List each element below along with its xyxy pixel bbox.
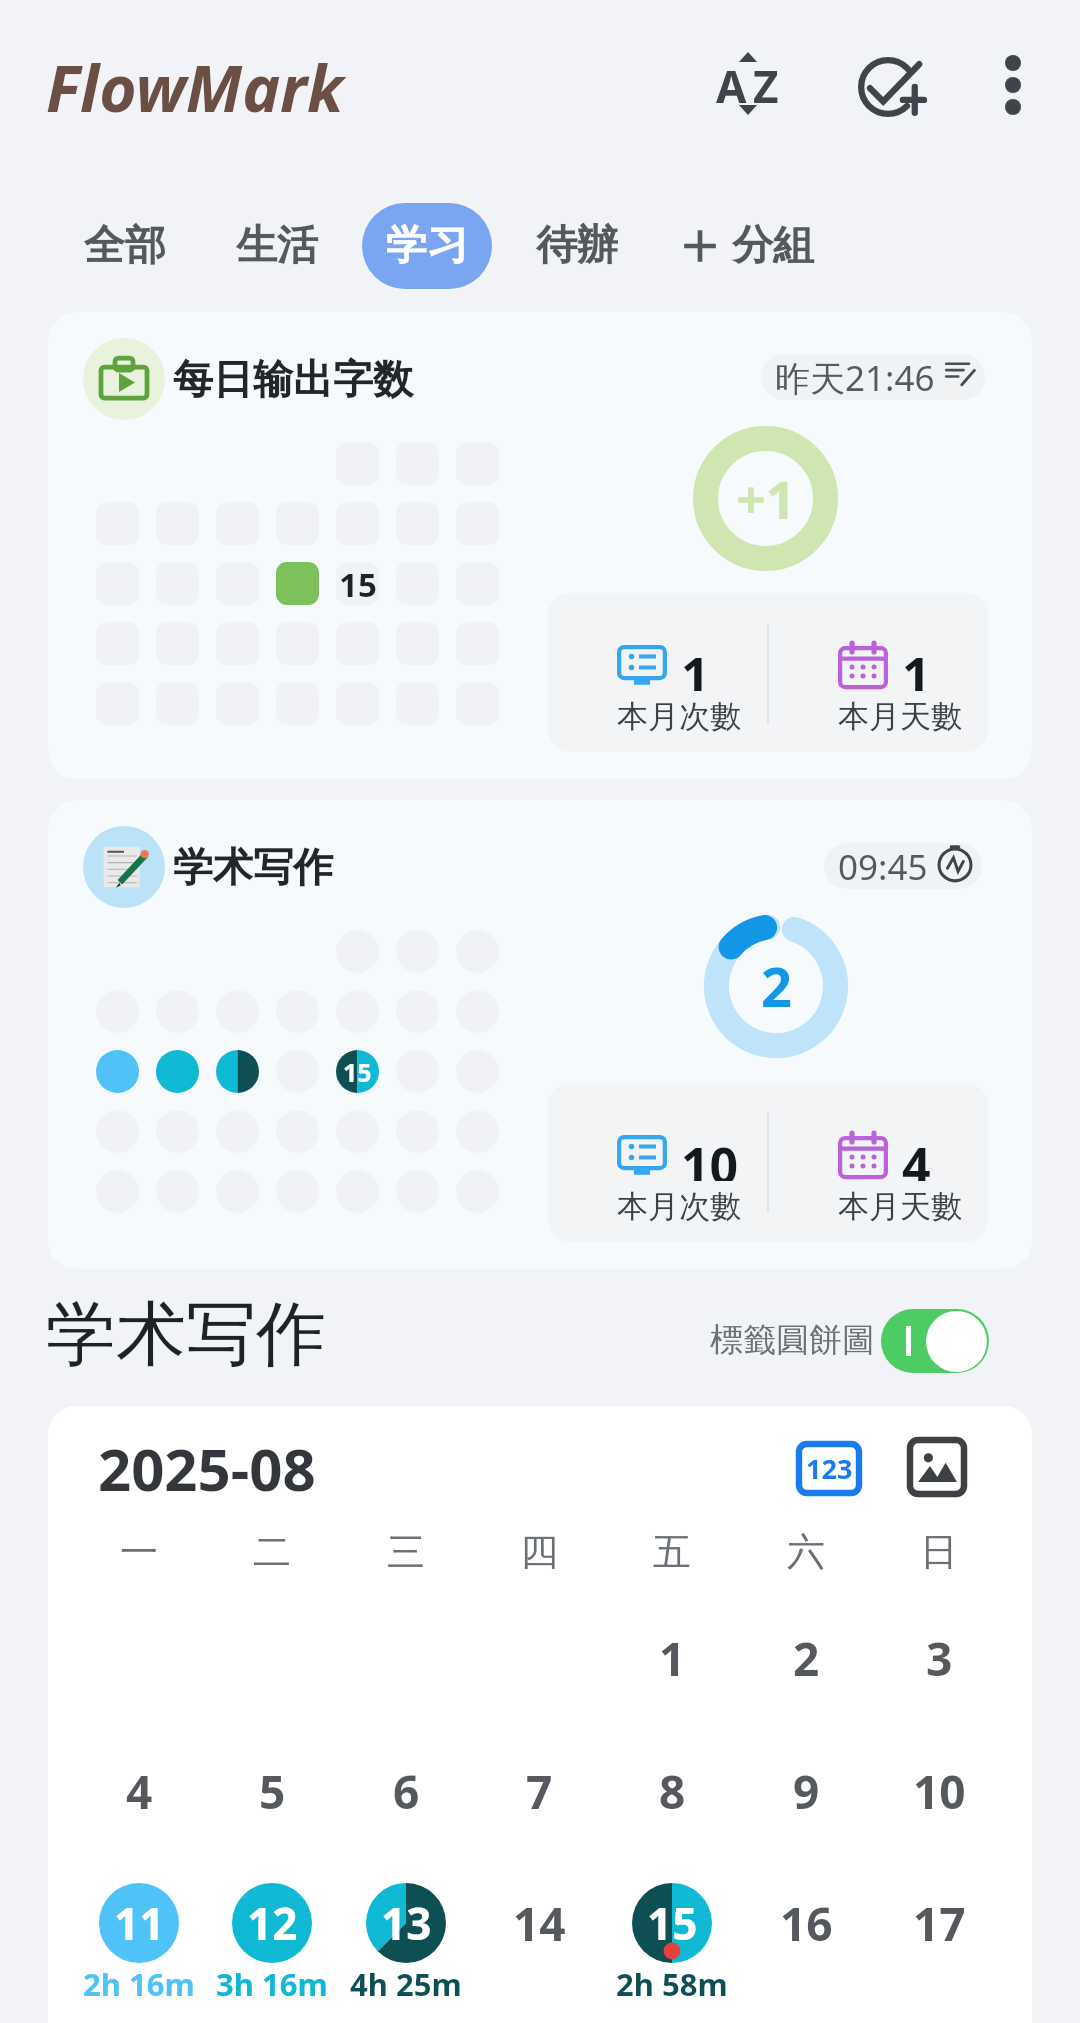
staticText: +1	[736, 463, 796, 534]
button[interactable]: Image view	[898, 1428, 975, 1505]
staticText: 15	[343, 1055, 372, 1089]
staticText: 1	[659, 1627, 686, 1690]
staticText: 2h 16m	[83, 1963, 195, 2005]
staticText: 二	[253, 1528, 291, 1576]
button[interactable]: 分組	[668, 203, 828, 289]
staticText: 生活	[236, 220, 318, 272]
staticText: 本月天數	[838, 697, 962, 733]
button[interactable]: 09:45	[824, 843, 982, 889]
staticText: FlowMark	[46, 44, 344, 131]
staticText: 10	[681, 1131, 739, 1181]
staticText: 昨天21:46	[775, 354, 935, 400]
staticText: 本月天數	[838, 1187, 962, 1223]
staticText: 6	[393, 1760, 420, 1823]
staticText: 15	[339, 562, 377, 605]
button[interactable]: 16	[740, 1881, 872, 1965]
button[interactable]: 每日输出字数	[48, 312, 1032, 779]
button[interactable]: 1	[606, 1616, 738, 1700]
button[interactable]: 17	[873, 1881, 1005, 1965]
staticText: 3h 16m	[216, 1963, 328, 2005]
button[interactable]: 全部	[70, 203, 180, 289]
staticText: 4	[126, 1760, 153, 1823]
staticText: 7	[526, 1760, 553, 1823]
button[interactable]: More options	[968, 40, 1058, 130]
staticText: 09:45	[838, 843, 928, 889]
staticText: 学习	[386, 220, 468, 272]
button[interactable]: 11	[73, 1881, 205, 1965]
staticText: 每日输出字数	[173, 354, 413, 404]
staticText: 11	[114, 1893, 165, 1953]
button[interactable]: 2	[740, 1616, 872, 1700]
staticText: 分組	[732, 220, 814, 272]
staticText: 1	[902, 641, 931, 691]
staticText: 123	[806, 1450, 853, 1487]
button[interactable]: 5	[206, 1749, 338, 1833]
button[interactable]: 10	[873, 1749, 1005, 1833]
staticText: 17	[913, 1892, 966, 1955]
button[interactable]: 学习	[362, 203, 492, 289]
button[interactable]: 8	[606, 1749, 738, 1833]
staticText: 14	[513, 1892, 566, 1955]
staticText: 本月次數	[617, 697, 741, 733]
button[interactable]: Numbers view	[787, 1431, 871, 1505]
staticText: 四	[520, 1528, 558, 1576]
staticText: 2h 58m	[616, 1963, 728, 2005]
button[interactable]: 昨天21:46	[761, 354, 985, 400]
button[interactable]: 14	[473, 1881, 605, 1965]
staticText: Z	[753, 56, 779, 116]
button[interactable]: Add task	[841, 37, 941, 137]
staticText: 5	[259, 1760, 286, 1823]
staticText: A	[716, 56, 747, 116]
staticText: 2	[793, 1627, 820, 1690]
button[interactable]: 12	[206, 1881, 338, 1965]
staticText: 4	[902, 1131, 931, 1181]
staticText: 学术写作	[46, 1291, 326, 1379]
staticText: 六	[787, 1528, 825, 1576]
staticText: 一	[120, 1528, 158, 1576]
button[interactable]: 15	[606, 1881, 738, 1965]
button[interactable]: 生活	[222, 203, 332, 289]
staticText: 学术写作	[173, 842, 333, 892]
staticText: 4h 25m	[350, 1963, 462, 2005]
staticText: 日	[920, 1528, 958, 1576]
staticText: 10	[913, 1760, 966, 1823]
button[interactable]: 6	[340, 1749, 472, 1833]
staticText: 13	[381, 1893, 432, 1953]
button[interactable]: 13	[340, 1881, 472, 1965]
staticText: 本月次數	[617, 1187, 741, 1223]
button[interactable]: 9	[740, 1749, 872, 1833]
button[interactable]: 3	[873, 1616, 1005, 1700]
button[interactable]: Sort A to Z	[698, 38, 798, 138]
staticText: 15	[647, 1893, 698, 1953]
button[interactable]: 待辦	[522, 203, 632, 289]
staticText: 標籤圓餅圖	[710, 1319, 875, 1361]
staticText: 全部	[84, 220, 166, 272]
button[interactable]: Toggle label pie chart	[881, 1309, 989, 1373]
staticText: 2025-08	[98, 1429, 316, 1508]
staticText: 8	[659, 1760, 686, 1823]
button[interactable]: 7	[473, 1749, 605, 1833]
staticText: 2	[761, 949, 792, 1023]
button[interactable]: 学术写作	[48, 800, 1032, 1269]
staticText: 3	[926, 1627, 953, 1690]
staticText: 五	[653, 1528, 691, 1576]
staticText: 待辦	[536, 220, 618, 272]
staticText: 9	[793, 1760, 820, 1823]
staticText: 16	[780, 1892, 833, 1955]
button[interactable]: 4	[73, 1749, 205, 1833]
staticText: 12	[247, 1893, 298, 1953]
staticText: 三	[387, 1528, 425, 1576]
staticText: 1	[681, 641, 710, 691]
